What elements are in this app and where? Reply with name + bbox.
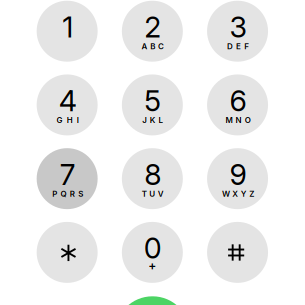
button[interactable]: Pound — [207, 222, 268, 283]
staticText: S — [78, 189, 83, 199]
staticText: C — [158, 42, 164, 51]
button[interactable] — [122, 1, 183, 62]
staticText: B — [150, 42, 155, 51]
staticText: X — [232, 189, 238, 199]
staticText: P — [52, 189, 57, 199]
button[interactable]: Star — [37, 222, 98, 283]
button[interactable] — [207, 148, 268, 209]
button[interactable]: 0 plus — [122, 222, 183, 283]
staticText: K — [150, 115, 156, 125]
staticText: M — [225, 115, 232, 125]
staticText: Z — [249, 189, 254, 199]
staticText: H — [67, 115, 73, 125]
staticText: 9 — [230, 157, 247, 192]
button[interactable] — [122, 74, 183, 135]
staticText: W — [222, 189, 230, 199]
button[interactable] — [207, 74, 268, 135]
staticText: 8 — [144, 157, 161, 192]
button[interactable]: Call — [115, 296, 190, 305]
staticText: N — [236, 115, 242, 125]
staticText: I — [77, 115, 79, 125]
button[interactable] — [122, 148, 183, 209]
staticText: 5 — [144, 83, 161, 118]
staticText: 2 — [144, 10, 161, 44]
staticText: D — [227, 42, 233, 51]
staticText: A — [142, 42, 148, 51]
staticText: V — [158, 189, 164, 199]
staticText: 7 — [60, 157, 76, 192]
staticText: J — [142, 115, 147, 125]
staticText: O — [245, 115, 251, 125]
button[interactable] — [37, 74, 98, 135]
staticText: 6 — [230, 83, 247, 118]
staticText: Y — [241, 189, 247, 199]
staticText: T — [142, 189, 147, 199]
staticText: 3 — [230, 10, 247, 44]
staticText: R — [70, 189, 75, 199]
button[interactable] — [37, 148, 98, 209]
staticText: F — [244, 42, 249, 51]
staticText: 1 — [62, 10, 73, 44]
staticText: 0 — [144, 231, 162, 265]
button[interactable] — [207, 1, 268, 62]
staticText: U — [149, 189, 155, 199]
staticText: G — [57, 115, 63, 125]
button[interactable]: 1 — [37, 1, 98, 62]
staticText: E — [236, 42, 241, 51]
staticText: 4 — [59, 83, 77, 118]
staticText: L — [159, 115, 164, 125]
staticText: + — [148, 258, 156, 272]
staticText: Q — [60, 189, 66, 199]
